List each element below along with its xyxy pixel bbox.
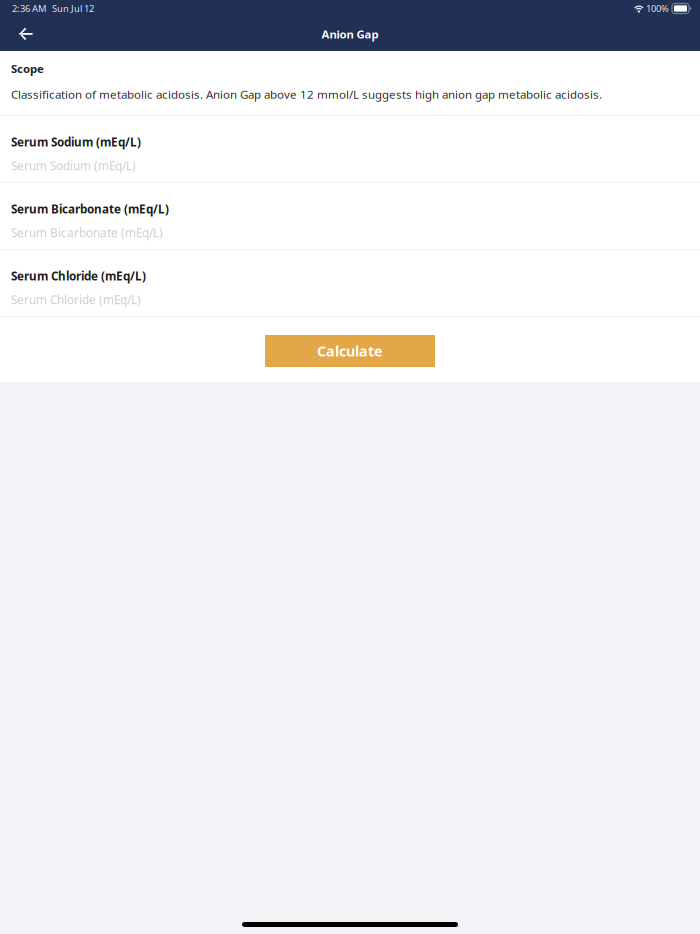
staticText: Serum Bicarbonate (mEq/L) [11, 201, 169, 217]
staticText: 2:36 AM [12, 2, 46, 15]
staticText: Anion Gap [321, 26, 378, 42]
staticText: Serum Chloride (mEq/L) [11, 268, 146, 284]
staticText: 100% [646, 2, 669, 15]
button[interactable]: Serum Sodium (mEq/L) [0, 116, 700, 182]
staticText: Serum Sodium (mEq/L) [11, 134, 141, 150]
staticText: Sun Jul 12 [52, 2, 94, 15]
staticText: Calculate [317, 341, 383, 361]
button[interactable]: Calculate [265, 335, 435, 367]
staticText: Classification of metabolic acidosis. An… [11, 86, 602, 102]
button[interactable]: Serum Bicarbonate (mEq/L) [0, 183, 700, 249]
staticText: Scope [11, 61, 44, 76]
staticText: Serum Chloride (mEq/L) [11, 292, 141, 308]
staticText: Serum Bicarbonate (mEq/L) [11, 225, 163, 241]
staticText: Serum Sodium (mEq/L) [11, 158, 136, 174]
button[interactable]: Back [0, 17, 52, 51]
button[interactable]: Serum Chloride (mEq/L) [0, 250, 700, 316]
